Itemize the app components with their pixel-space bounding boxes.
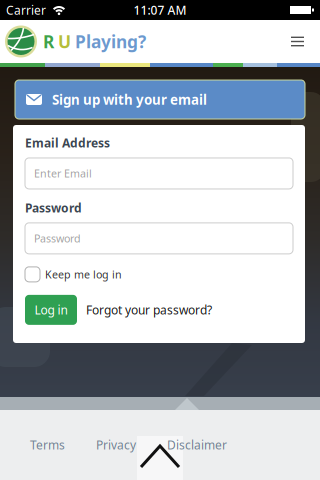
- staticText: U: [58, 30, 71, 53]
- button[interactable]: Privacy: [96, 437, 136, 453]
- button[interactable]: Enter Email: [25, 158, 293, 189]
- staticText: Password: [34, 231, 81, 245]
- staticText: Enter Email: [34, 166, 92, 181]
- staticText: 11:07 AM: [133, 2, 186, 18]
- button[interactable]: Scroll to top: [139, 444, 181, 470]
- staticText: Email Address: [25, 135, 110, 151]
- button[interactable]: Disclaimer: [167, 437, 227, 453]
- button[interactable]: Forgot your password?: [86, 302, 212, 318]
- staticText: Password: [25, 200, 82, 216]
- button[interactable]: Log in: [25, 295, 77, 325]
- staticText: Forgot your password?: [86, 302, 212, 318]
- button[interactable]: Menu: [291, 27, 320, 56]
- staticText: R: [43, 30, 54, 53]
- staticText: Terms: [30, 437, 65, 453]
- staticText: Carrier: [6, 2, 46, 18]
- button[interactable]: Terms: [30, 437, 65, 453]
- staticText: Log in: [34, 302, 67, 318]
- staticText: Playing?: [75, 30, 146, 53]
- button[interactable]: R U Playing? home: [0, 25, 146, 57]
- button[interactable]: Password: [25, 223, 293, 254]
- staticText: Privacy: [96, 437, 136, 453]
- staticText: Keep me log in: [45, 267, 122, 281]
- staticText: Sign up with your email: [52, 91, 207, 108]
- button[interactable]: Keep me log in: [25, 267, 122, 282]
- staticText: Disclaimer: [167, 437, 227, 453]
- button[interactable]: Sign up with your email: [15, 80, 305, 119]
